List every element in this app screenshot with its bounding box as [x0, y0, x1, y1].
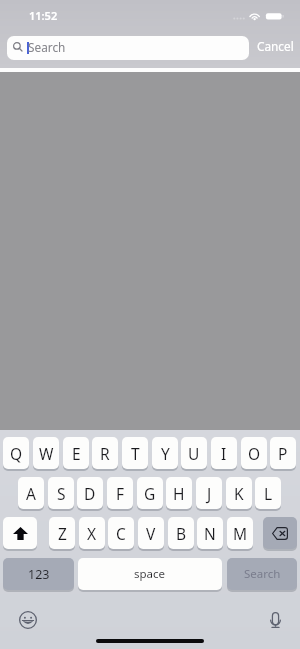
button[interactable]: Z [49, 517, 75, 549]
button[interactable]: U [181, 437, 207, 469]
button[interactable]: C [108, 517, 134, 549]
button[interactable]: Backspace [263, 517, 297, 549]
staticText: Y [161, 443, 170, 464]
staticText: D [84, 483, 96, 504]
staticText: T [131, 443, 140, 464]
staticText: Z [58, 523, 67, 544]
button[interactable]: Emoji keyboard [19, 611, 37, 629]
staticText: 11:52 [29, 8, 58, 23]
button[interactable]: F [107, 477, 133, 509]
button[interactable]: W [33, 437, 59, 469]
button[interactable]: Y [152, 437, 178, 469]
button[interactable]: Q [3, 437, 29, 469]
staticText: W [39, 443, 54, 464]
staticText: V [146, 523, 156, 544]
button[interactable]: I [211, 437, 237, 469]
button[interactable]: Shift [3, 517, 37, 549]
staticText: F [116, 483, 125, 504]
button[interactable]: Dictate [270, 612, 281, 628]
button[interactable]: A [18, 477, 44, 509]
button[interactable]: space [78, 558, 222, 590]
button[interactable]: G [137, 477, 163, 509]
staticText: R [100, 443, 110, 464]
staticText: B [176, 523, 187, 544]
button[interactable]: 123 [3, 558, 74, 590]
staticText: E [72, 443, 81, 464]
staticText: G [144, 483, 156, 504]
staticText: H [173, 483, 185, 504]
button[interactable]: T [122, 437, 148, 469]
button[interactable]: Search [7, 36, 249, 60]
staticText: M [233, 523, 248, 544]
staticText: J [207, 483, 212, 504]
button[interactable]: J [196, 477, 222, 509]
staticText: C [116, 523, 126, 544]
button[interactable]: D [77, 477, 103, 509]
staticText: space [134, 566, 166, 582]
button[interactable]: H [166, 477, 192, 509]
button[interactable]: P [270, 437, 296, 469]
staticText: 123 [28, 566, 50, 583]
staticText: U [188, 443, 200, 464]
staticText: L [264, 483, 273, 504]
staticText: P [278, 443, 288, 464]
button[interactable]: K [226, 477, 252, 509]
button[interactable]: N [197, 517, 223, 549]
staticText: A [26, 483, 36, 504]
button[interactable]: R [92, 437, 118, 469]
staticText: N [204, 523, 216, 544]
staticText: Search [244, 566, 281, 582]
button[interactable]: S [48, 477, 74, 509]
button[interactable]: V [138, 517, 164, 549]
staticText: Cancel [257, 38, 294, 54]
button[interactable]: B [168, 517, 194, 549]
button[interactable]: E [63, 437, 89, 469]
staticText: X [87, 523, 97, 544]
staticText: K [234, 483, 244, 504]
staticText: Search [28, 39, 66, 55]
button[interactable]: L [255, 477, 281, 509]
button[interactable]: M [227, 517, 253, 549]
staticText: I [221, 443, 227, 464]
staticText: Q [10, 443, 23, 464]
button[interactable]: Search [227, 558, 297, 590]
button[interactable]: O [241, 437, 267, 469]
button[interactable]: Cancel [255, 36, 296, 56]
button[interactable]: X [79, 517, 105, 549]
staticText: O [248, 443, 261, 464]
staticText: S [57, 483, 66, 504]
